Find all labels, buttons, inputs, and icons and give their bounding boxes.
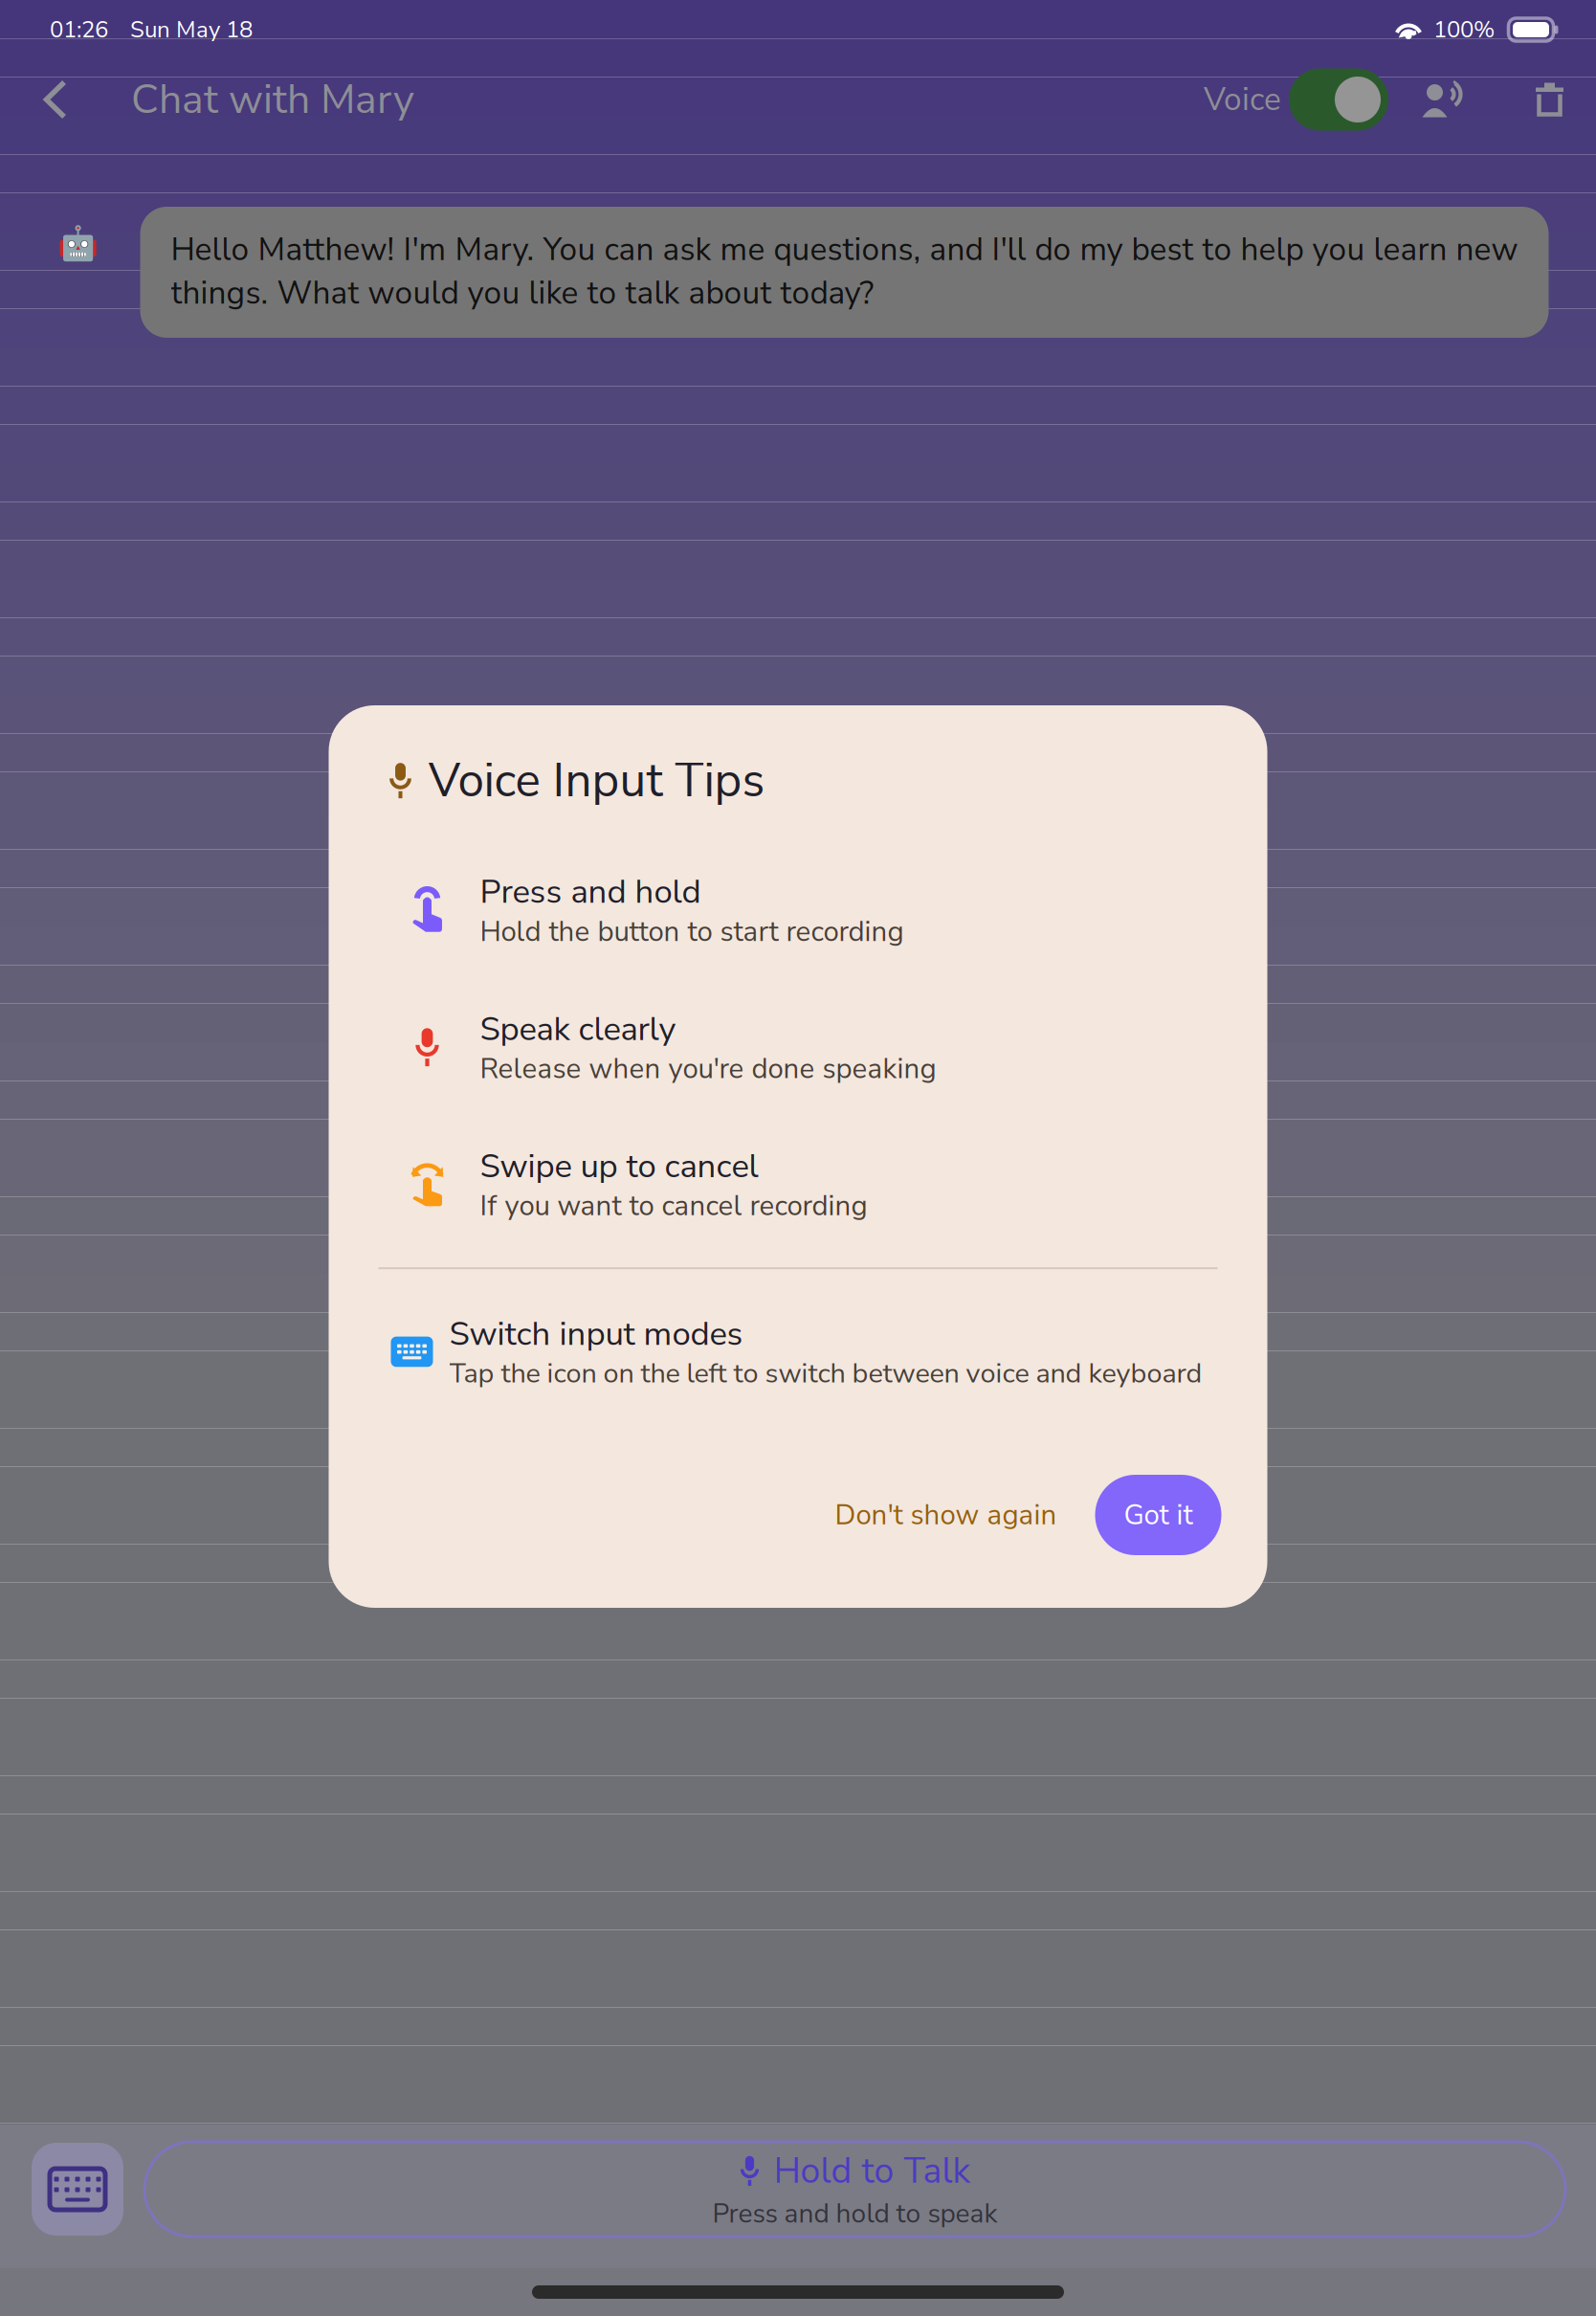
staticText: 100% (1433, 14, 1495, 45)
button[interactable]: Hold to Talk (144, 2142, 1565, 2237)
staticText: Don't show again (835, 1496, 1057, 1534)
staticText: If you want to cancel recording (480, 1187, 867, 1225)
staticText: Speak clearly (480, 1006, 676, 1052)
staticText: Press and hold (480, 869, 701, 915)
staticText: Got it (1124, 1496, 1193, 1534)
staticText: Hold to Talk (774, 2147, 971, 2195)
staticText: Hello Matthew! I'm Mary. You can ask me … (171, 228, 1518, 315)
button[interactable]: Switch to keyboard input (32, 2143, 123, 2236)
staticText: Voice (1204, 78, 1281, 121)
staticText: Press and hold to speak (712, 2195, 997, 2232)
staticText: Tap the icon on the left to switch betwe… (449, 1355, 1202, 1392)
staticText: Hold the button to start recording (480, 913, 904, 951)
staticText: Sun May 18 (130, 14, 253, 45)
staticText: Release when you're done speaking (480, 1050, 936, 1088)
button[interactable]: Speaker output (1388, 59, 1513, 140)
staticText: Voice Input Tips (428, 748, 765, 813)
button[interactable]: Voice mode (1281, 55, 1388, 144)
staticText: 🤖 (57, 224, 99, 263)
button[interactable]: Back (23, 59, 88, 140)
button[interactable]: Clear chat (1513, 59, 1586, 140)
staticText: Chat with Mary (131, 72, 414, 127)
button[interactable]: Don't show again (816, 1484, 1076, 1546)
staticText: 01:26 (50, 14, 108, 45)
staticText: Swipe up to cancel (480, 1144, 758, 1189)
staticText: Switch input modes (449, 1311, 743, 1357)
button[interactable]: Got it (1095, 1475, 1221, 1555)
